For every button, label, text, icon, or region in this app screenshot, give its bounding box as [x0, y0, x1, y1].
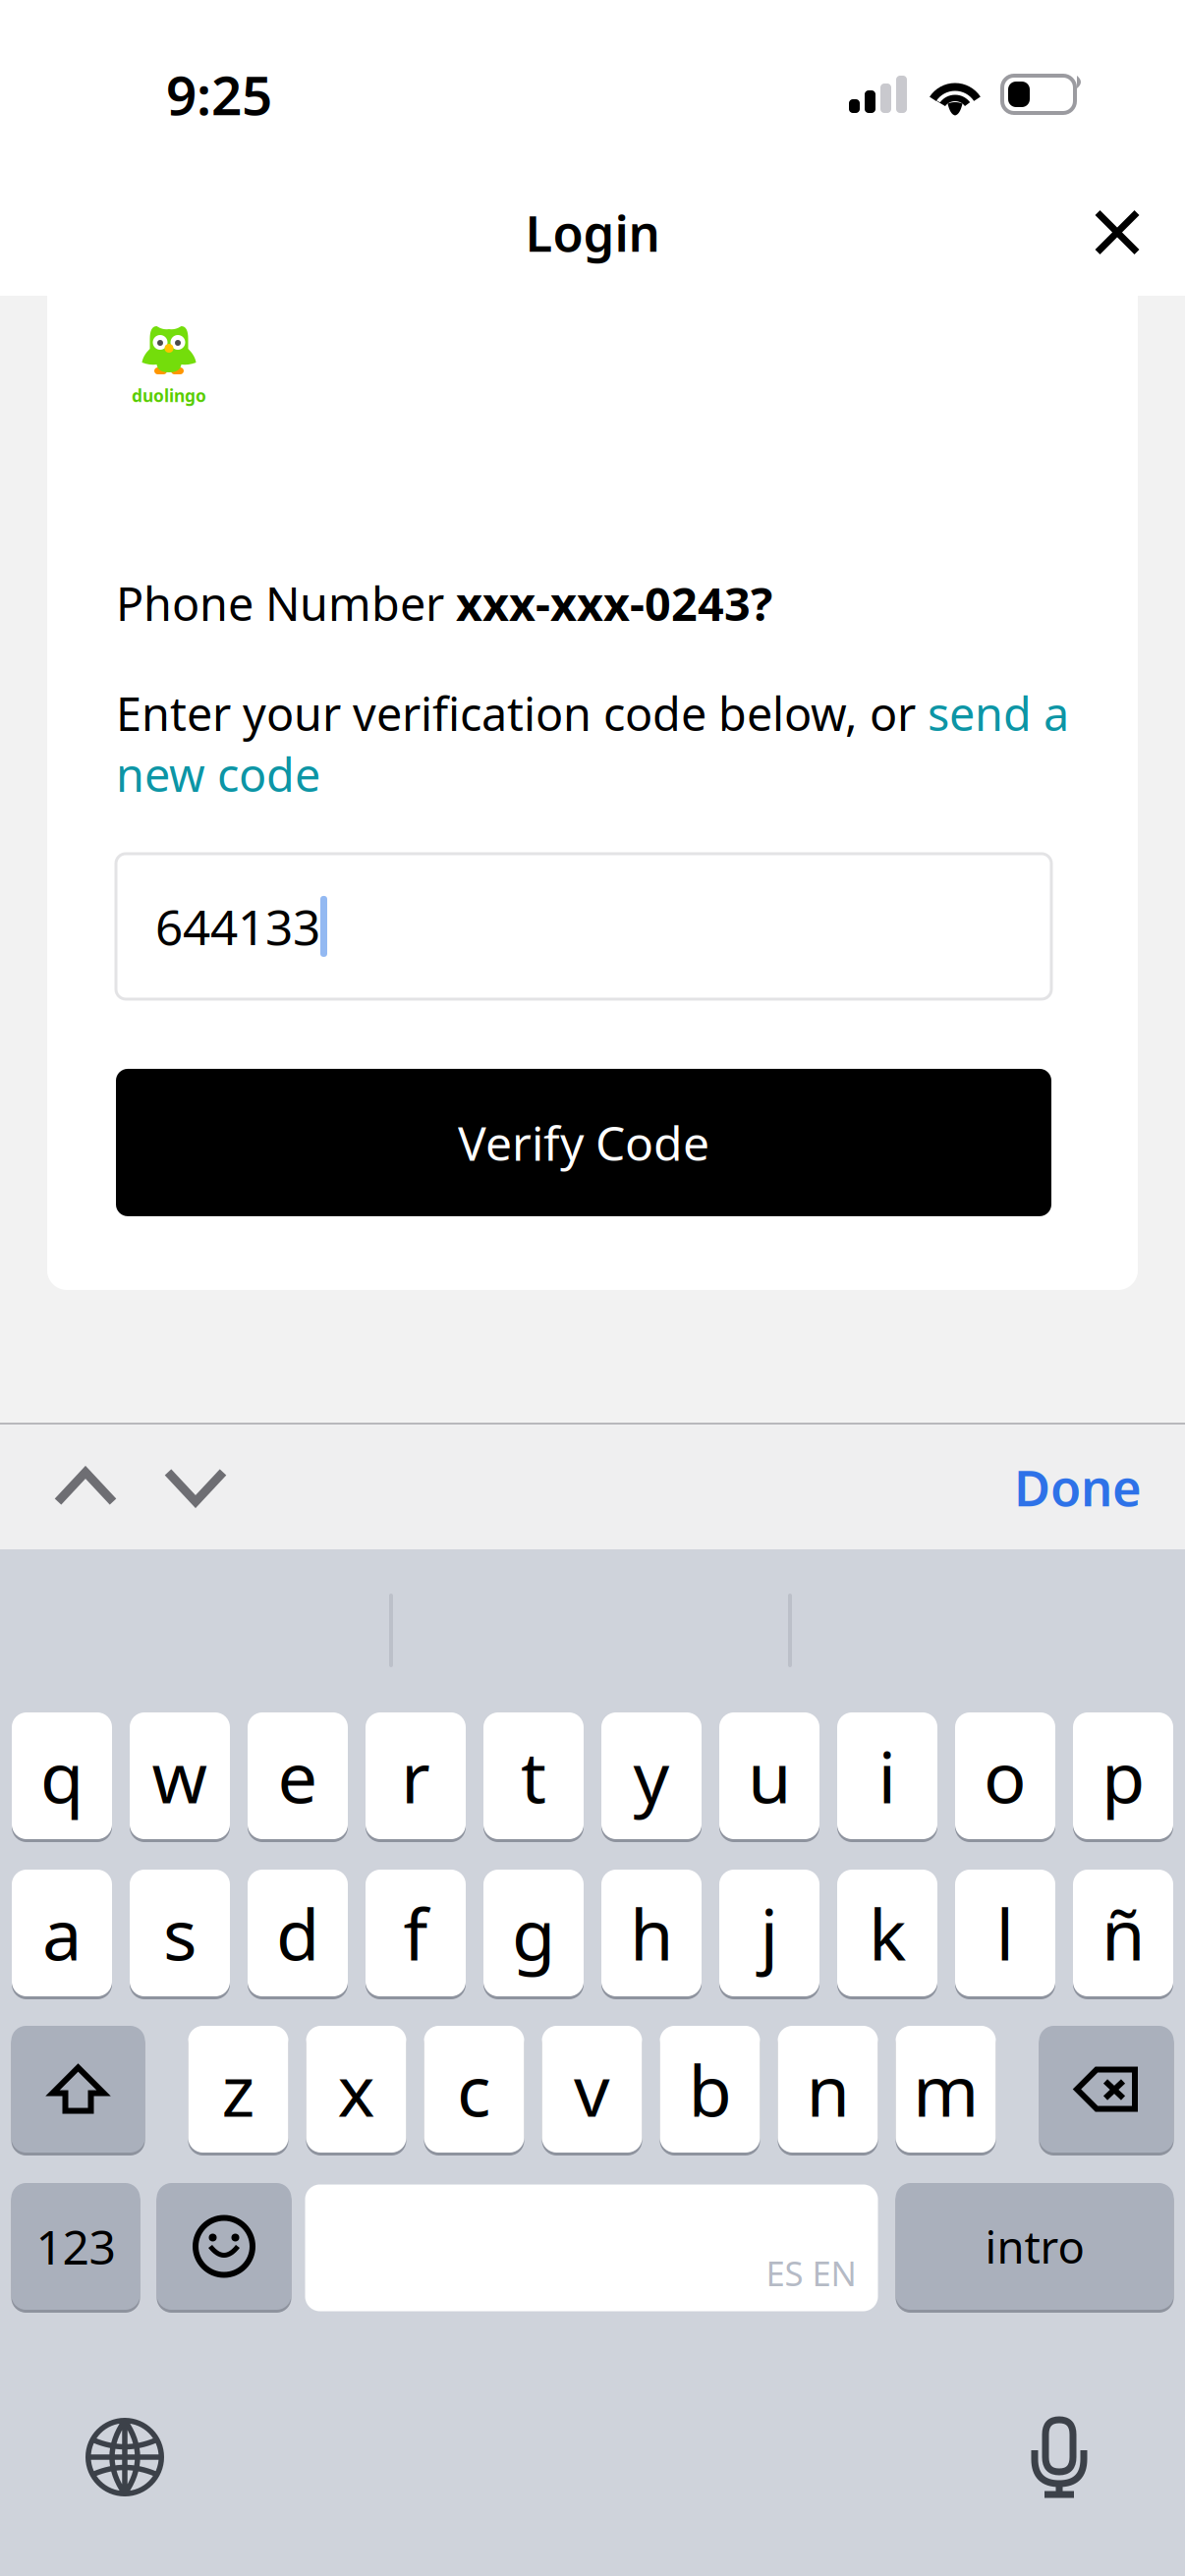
- staticText: c: [457, 2042, 491, 2136]
- staticText: m: [913, 2042, 979, 2136]
- staticText: 644133: [155, 894, 320, 959]
- staticText: s: [163, 1886, 197, 1980]
- staticText: u: [748, 1729, 791, 1823]
- staticText: a: [42, 1886, 82, 1980]
- staticText: l: [996, 1886, 1015, 1980]
- staticText: Done: [1014, 1454, 1142, 1520]
- staticText: x: [338, 2042, 375, 2136]
- staticText: ES EN: [766, 2250, 856, 2296]
- button[interactable]: k: [837, 1870, 937, 1999]
- button[interactable]: m: [896, 2026, 996, 2156]
- button[interactable]: s: [130, 1870, 230, 1999]
- button[interactable]: v: [542, 2026, 642, 2156]
- button[interactable]: Dictate: [1000, 2403, 1118, 2511]
- button[interactable]: n: [778, 2026, 878, 2156]
- staticText: 123: [36, 2215, 115, 2278]
- button[interactable]: q: [12, 1712, 112, 1842]
- button[interactable]: j: [719, 1870, 819, 1999]
- staticText: o: [984, 1729, 1027, 1823]
- staticText: p: [1101, 1729, 1145, 1823]
- staticText: y: [633, 1729, 670, 1823]
- button[interactable]: e: [248, 1712, 348, 1842]
- staticText: Enter your verification code below, or s…: [116, 683, 1069, 805]
- button[interactable]: d: [248, 1870, 348, 1999]
- button[interactable]: c: [424, 2026, 524, 2156]
- staticText: ñ: [1101, 1886, 1145, 1980]
- staticText: e: [278, 1729, 318, 1823]
- button[interactable]: Emoji: [157, 2183, 291, 2313]
- button[interactable]: w: [130, 1712, 230, 1842]
- staticText: v: [574, 2042, 610, 2136]
- staticText: k: [869, 1886, 906, 1980]
- staticText: Verify Code: [458, 1111, 709, 1174]
- staticText: z: [222, 2042, 255, 2136]
- staticText: t: [521, 1729, 546, 1823]
- button[interactable]: i: [837, 1712, 937, 1842]
- staticText: q: [40, 1729, 84, 1823]
- button[interactable]: u: [719, 1712, 819, 1842]
- button[interactable]: ñ: [1073, 1870, 1173, 1999]
- staticText: Phone Number xxx-xxx-0243?: [116, 573, 772, 634]
- button[interactable]: t: [483, 1712, 584, 1842]
- staticText: i: [878, 1729, 897, 1823]
- button[interactable]: Verify Code: [116, 1069, 1051, 1216]
- staticText: h: [630, 1886, 673, 1980]
- button[interactable]: 123: [11, 2183, 140, 2313]
- button[interactable]: Close: [1070, 185, 1164, 280]
- staticText: Login: [525, 199, 660, 265]
- button[interactable]: Previous field: [30, 1425, 141, 1549]
- button[interactable]: h: [601, 1870, 702, 1999]
- button[interactable]: x: [306, 2026, 406, 2156]
- button[interactable]: y: [601, 1712, 702, 1842]
- button[interactable]: z: [188, 2026, 288, 2156]
- button[interactable]: p: [1073, 1712, 1173, 1842]
- button[interactable]: a: [12, 1870, 112, 1999]
- button[interactable]: Delete: [1039, 2026, 1174, 2156]
- button[interactable]: f: [366, 1870, 466, 1999]
- button[interactable]: Change keyboard: [66, 2403, 184, 2511]
- staticText: g: [512, 1886, 555, 1980]
- staticText: w: [152, 1729, 208, 1823]
- button[interactable]: l: [955, 1870, 1055, 1999]
- button[interactable]: Done: [1014, 1425, 1142, 1549]
- button[interactable]: o: [955, 1712, 1055, 1842]
- staticText: duolingo: [132, 384, 206, 407]
- staticText: intro: [985, 2217, 1084, 2276]
- staticText: b: [688, 2042, 732, 2136]
- staticText: f: [403, 1886, 428, 1980]
- button[interactable]: Next field: [141, 1425, 251, 1549]
- button[interactable]: g: [483, 1870, 584, 1999]
- button[interactable]: b: [660, 2026, 760, 2156]
- staticText: n: [806, 2042, 849, 2136]
- button[interactable]: Space: [305, 2184, 878, 2311]
- staticText: r: [401, 1729, 430, 1823]
- button[interactable]: r: [366, 1712, 466, 1842]
- button[interactable]: intro: [896, 2183, 1174, 2313]
- button[interactable]: Shift: [11, 2026, 145, 2156]
- staticText: 9:25: [166, 59, 272, 130]
- staticText: j: [760, 1886, 779, 1980]
- staticText: d: [276, 1886, 319, 1980]
